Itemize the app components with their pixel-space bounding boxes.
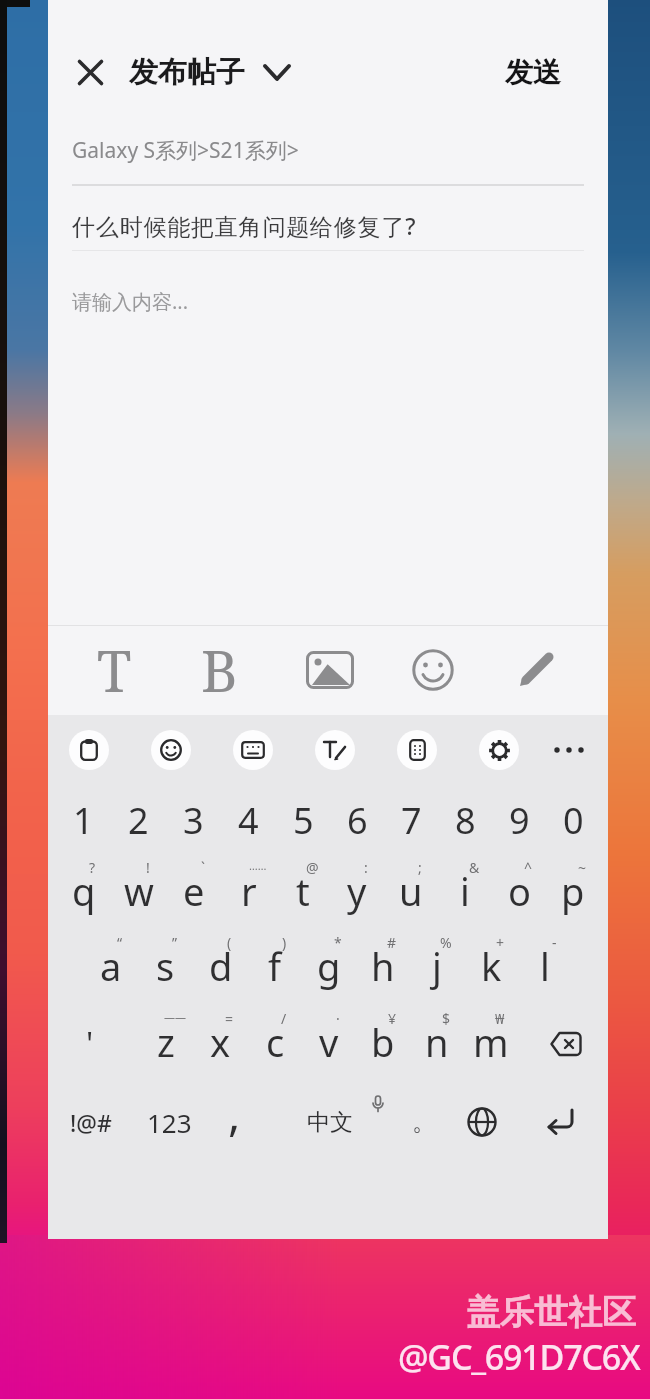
- button[interactable]: 4: [221, 783, 276, 857]
- button[interactable]: [285, 630, 375, 710]
- staticText: l: [540, 940, 550, 992]
- staticText: +: [496, 933, 505, 952]
- staticText: n: [425, 1016, 449, 1068]
- staticText: ': [86, 1022, 94, 1066]
- button[interactable]: 中文: [288, 1085, 372, 1159]
- button[interactable]: B: [174, 630, 264, 710]
- staticText: %: [440, 933, 452, 952]
- button[interactable]: #: [356, 931, 410, 1005]
- staticText: o: [508, 865, 531, 917]
- button[interactable]: 9: [492, 783, 546, 857]
- staticText: 5: [293, 796, 314, 845]
- staticText: !@#: [70, 1107, 112, 1138]
- button[interactable]: [479, 730, 519, 770]
- button[interactable]: ,: [200, 1085, 268, 1159]
- staticText: B: [201, 632, 238, 708]
- staticText: c: [266, 1016, 285, 1068]
- button[interactable]: ₩: [464, 1007, 518, 1081]
- button[interactable]: [522, 1085, 600, 1159]
- button[interactable]: ^: [492, 856, 546, 930]
- button[interactable]: 8: [438, 783, 492, 857]
- button[interactable]: [491, 630, 581, 710]
- button[interactable]: !@#: [56, 1085, 126, 1159]
- staticText: “: [117, 933, 123, 952]
- staticText: 发布帖子: [129, 54, 245, 91]
- button[interactable]: /: [248, 1007, 302, 1081]
- button[interactable]: +: [464, 931, 518, 1005]
- button[interactable]: ·: [302, 1007, 356, 1081]
- button[interactable]: [397, 730, 437, 770]
- button[interactable]: [532, 1007, 600, 1081]
- button[interactable]: [549, 730, 589, 770]
- staticText: ……: [249, 858, 267, 873]
- staticText: g: [317, 940, 341, 992]
- button[interactable]: 。: [392, 1085, 456, 1159]
- button[interactable]: ;: [384, 856, 438, 930]
- staticText: 4: [238, 796, 259, 845]
- button[interactable]: $: [410, 1007, 464, 1081]
- button[interactable]: 发布帖子: [129, 48, 291, 96]
- staticText: ;: [418, 858, 422, 877]
- staticText: 7: [401, 796, 422, 845]
- staticText: t: [296, 865, 310, 917]
- button[interactable]: [315, 730, 355, 770]
- button[interactable]: ): [248, 931, 302, 1005]
- button[interactable]: `: [166, 856, 221, 930]
- button[interactable]: 1: [56, 783, 111, 857]
- button[interactable]: 0: [546, 783, 600, 857]
- button[interactable]: [452, 1085, 512, 1159]
- button[interactable]: [388, 630, 478, 710]
- staticText: ₩: [495, 1009, 505, 1028]
- button[interactable]: T: [69, 630, 159, 710]
- button[interactable]: 2: [111, 783, 166, 857]
- button[interactable]: (: [193, 931, 248, 1005]
- button[interactable]: ”: [138, 931, 193, 1005]
- button[interactable]: “: [83, 931, 138, 1005]
- button[interactable]: *: [302, 931, 356, 1005]
- button[interactable]: ——: [138, 1007, 193, 1081]
- button[interactable]: 6: [330, 783, 384, 857]
- button[interactable]: %: [410, 931, 464, 1005]
- button[interactable]: [69, 730, 109, 770]
- button[interactable]: [151, 730, 191, 770]
- button[interactable]: 123: [134, 1085, 204, 1159]
- button[interactable]: 3: [166, 783, 221, 857]
- staticText: :: [364, 858, 368, 877]
- staticText: #: [387, 933, 397, 952]
- button[interactable]: :: [330, 856, 384, 930]
- button[interactable]: ?: [56, 856, 111, 930]
- staticText: (: [227, 933, 232, 952]
- staticText: ^: [524, 858, 533, 877]
- button[interactable]: 5: [276, 783, 330, 857]
- staticText: w: [124, 865, 154, 917]
- button[interactable]: [233, 730, 273, 770]
- button[interactable]: ……: [221, 856, 276, 930]
- staticText: /: [281, 1009, 287, 1028]
- button[interactable]: [70, 52, 110, 92]
- staticText: 6: [347, 796, 368, 845]
- button[interactable]: -: [518, 931, 572, 1005]
- button[interactable]: =: [193, 1007, 248, 1081]
- button[interactable]: ¥: [356, 1007, 410, 1081]
- button[interactable]: ~: [546, 856, 600, 930]
- staticText: 9: [509, 796, 530, 845]
- staticText: e: [183, 865, 205, 917]
- staticText: 请输入内容...: [72, 288, 189, 315]
- button[interactable]: Galaxy S系列>S21系列>: [48, 128, 608, 172]
- button[interactable]: !: [111, 856, 166, 930]
- staticText: a: [100, 940, 122, 992]
- button[interactable]: 发送: [505, 55, 561, 90]
- staticText: 。: [412, 1107, 436, 1137]
- staticText: s: [156, 940, 175, 992]
- staticText: z: [157, 1016, 175, 1068]
- staticText: -: [552, 933, 557, 952]
- staticText: 0: [563, 796, 584, 845]
- button[interactable]: &: [438, 856, 492, 930]
- button[interactable]: 7: [384, 783, 438, 857]
- staticText: 盖乐世社区: [466, 1291, 636, 1334]
- staticText: r: [241, 865, 257, 917]
- staticText: ——: [164, 1009, 186, 1024]
- staticText: ,: [228, 1082, 241, 1145]
- button[interactable]: ': [56, 1007, 124, 1081]
- button[interactable]: @: [276, 856, 330, 930]
